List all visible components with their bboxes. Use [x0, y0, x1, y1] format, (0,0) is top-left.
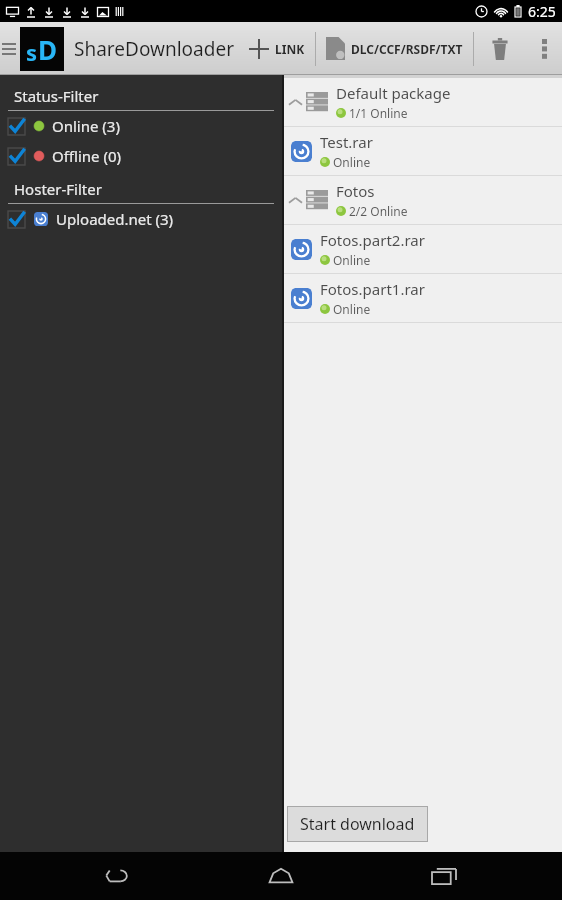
- button[interactable]: LINK: [238, 22, 315, 75]
- staticText: Online: [333, 252, 371, 268]
- staticText: Hoster-Filter: [14, 179, 102, 199]
- staticText: Offline (0): [52, 146, 121, 166]
- button[interactable]: Back: [73, 852, 163, 900]
- button[interactable]: Online (3): [0, 111, 282, 141]
- staticText: Online: [333, 301, 371, 317]
- button[interactable]: Fotos.part2.rar: [284, 225, 562, 273]
- button[interactable]: Collapse package: [284, 78, 562, 126]
- staticText: 1/1 Online: [349, 105, 408, 121]
- button[interactable]: Delete: [474, 22, 526, 75]
- other: Open navigation drawer: [2, 41, 16, 57]
- button[interactable]: Collapse package: [284, 176, 562, 224]
- button[interactable]: Offline (0): [0, 141, 282, 171]
- button[interactable]: Start download: [287, 806, 428, 842]
- staticText: Online (3): [52, 116, 120, 136]
- staticText: Fotos.part1.rar: [320, 279, 425, 299]
- staticText: Fotos: [336, 181, 375, 201]
- staticText: ShareDownloader: [74, 36, 234, 62]
- other: Collapse package: [289, 194, 302, 207]
- staticText: D: [38, 32, 58, 67]
- staticText: Test.rar: [320, 132, 373, 152]
- staticText: Default package: [336, 83, 451, 103]
- staticText: Start download: [300, 813, 415, 835]
- button[interactable]: Home: [236, 852, 326, 900]
- button[interactable]: Uploaded.net (3): [0, 204, 282, 234]
- button[interactable]: Test.rar: [284, 127, 562, 175]
- staticText: LINK: [275, 41, 305, 57]
- staticText: Online: [333, 154, 371, 170]
- staticText: Uploaded.net (3): [56, 209, 174, 229]
- button[interactable]: More options: [526, 22, 562, 75]
- button[interactable]: Fotos.part1.rar: [284, 274, 562, 322]
- staticText: Fotos.part2.rar: [320, 230, 425, 250]
- button[interactable]: DLC/CCF/RSDF/TXT: [316, 22, 473, 75]
- staticText: 6:25: [528, 2, 556, 21]
- button[interactable]: Open navigation drawer: [0, 22, 238, 75]
- staticText: DLC/CCF/RSDF/TXT: [351, 41, 463, 57]
- staticText: 2/2 Online: [349, 203, 408, 219]
- other: Collapse package: [289, 96, 302, 109]
- button[interactable]: Recent apps: [399, 852, 489, 900]
- staticText: s: [26, 37, 38, 67]
- staticText: Status-Filter: [14, 86, 99, 106]
